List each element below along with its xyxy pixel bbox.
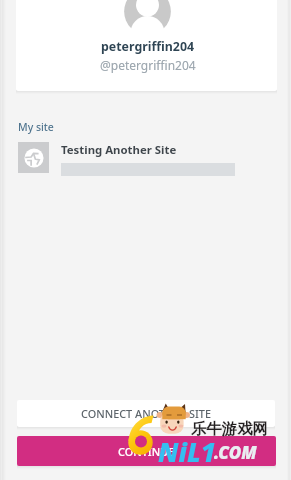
staticText: CONTINUE [118, 444, 175, 459]
staticText: CONNECT ANOTHER SITE [81, 406, 211, 421]
staticText: NiL1 [158, 434, 216, 469]
staticText: My site [18, 120, 54, 134]
button[interactable]: CONTINUE [17, 436, 276, 466]
staticText: Testing Another Site [61, 142, 177, 158]
staticText: .COM [214, 441, 257, 464]
button[interactable]: Testing Another Site [0, 140, 291, 176]
staticText: petergriffin204 [101, 38, 195, 55]
button[interactable]: CONNECT ANOTHER SITE [17, 400, 275, 427]
staticText: @petergriffin204 [100, 57, 196, 73]
staticText: 乐牛游戏网 [191, 419, 268, 438]
